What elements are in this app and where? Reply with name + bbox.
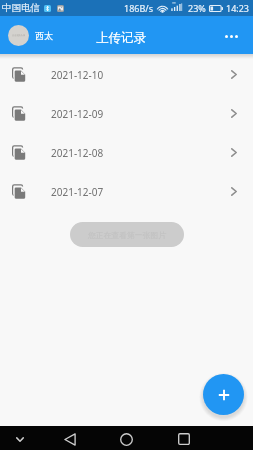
button[interactable]: Add bbox=[203, 374, 244, 415]
button[interactable]: Recent apps bbox=[169, 427, 198, 450]
button[interactable]: Hide navigation bar bbox=[8, 429, 32, 449]
staticText: 23% bbox=[188, 2, 206, 14]
button[interactable]: 2021-12-07 bbox=[0, 172, 253, 211]
button[interactable]: Back bbox=[55, 427, 84, 450]
button[interactable]: 2021-12-09 bbox=[0, 94, 253, 133]
staticText: 186B/s bbox=[124, 2, 153, 14]
button[interactable]: Home bbox=[112, 427, 141, 450]
staticText: 2021-12-07 bbox=[51, 185, 104, 199]
button[interactable]: 2021-12-08 bbox=[0, 133, 253, 172]
staticText: 2021-12-09 bbox=[51, 107, 104, 121]
staticText: 点击更换头像 bbox=[12, 34, 26, 37]
staticText: 14:23 bbox=[226, 2, 250, 14]
button[interactable]: More options bbox=[215, 16, 253, 54]
staticText: 2021-12-08 bbox=[51, 146, 104, 160]
button[interactable]: 点击更换头像 bbox=[8, 16, 53, 54]
staticText: 上传记录 bbox=[96, 30, 146, 46]
staticText: 您正在查看第一张图片 bbox=[88, 230, 166, 240]
button[interactable]: 2021-12-10 bbox=[0, 55, 253, 94]
staticText: 西太 bbox=[35, 30, 53, 41]
staticText: 2021-12-10 bbox=[51, 68, 104, 82]
staticText: 中国电信 bbox=[2, 2, 40, 14]
